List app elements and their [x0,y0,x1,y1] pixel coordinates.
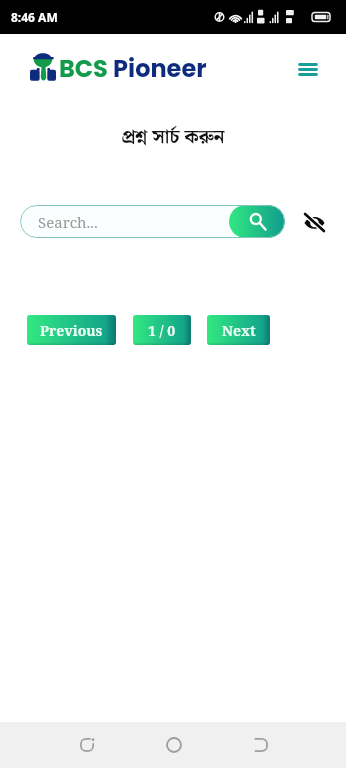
staticText: Next [222,321,256,340]
staticText: প্রশ্ন সার্চ করুন [0,122,346,152]
button[interactable]: Search... [20,205,285,238]
staticText: Previous [40,321,103,340]
staticText: Search... [38,212,98,232]
button[interactable]: Back [43,722,130,768]
button[interactable]: Menu [291,52,325,86]
staticText: Pioneer [108,52,207,86]
button[interactable]: Toggle visibility [299,207,329,237]
staticText: BCS [59,52,108,86]
button[interactable]: 1 / 0 [133,315,191,345]
button[interactable]: Recents [217,722,304,768]
staticText: 8:46 AM [11,9,58,25]
button[interactable]: Home [130,722,217,768]
staticText: 1 / 0 [148,321,176,340]
button[interactable]: Next [207,315,270,345]
button[interactable]: Search [229,205,285,238]
button[interactable]: Previous [27,315,116,345]
